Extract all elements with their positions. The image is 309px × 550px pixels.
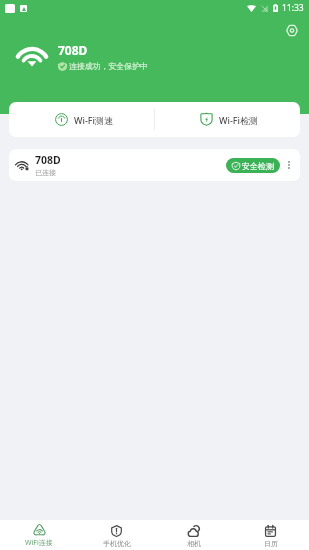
button[interactable]: 安全检测 — [226, 158, 280, 173]
staticText: 手机优化 — [103, 539, 131, 548]
staticText: Wi-Fi检测 — [219, 114, 258, 126]
staticText: Wi-Fi测速 — [74, 114, 113, 126]
button[interactable]: Settings — [282, 21, 301, 40]
button[interactable]: 日历 — [232, 520, 309, 550]
button[interactable]: 手机优化 — [78, 520, 155, 550]
staticText: 安全检测 — [242, 161, 274, 171]
button[interactable]: 相机 — [155, 520, 232, 550]
button[interactable]: Wi-Fi测速 — [9, 102, 154, 137]
staticText: 708D — [58, 42, 88, 58]
staticText: 已连接 — [35, 168, 56, 177]
staticText: 连接成功，安全保护中 — [69, 61, 148, 71]
button[interactable]: Wi-Fi检测 — [155, 102, 300, 137]
staticText: 相机 — [187, 539, 201, 548]
button[interactable]: 708D — [9, 149, 300, 181]
button[interactable]: WiFi连接 — [0, 520, 78, 550]
staticText: 11:33 — [282, 2, 304, 14]
button[interactable]: More options — [280, 149, 297, 181]
staticText: 日历 — [264, 539, 278, 548]
staticText: 708D — [35, 153, 61, 167]
staticText: WiFi连接 — [25, 538, 53, 548]
